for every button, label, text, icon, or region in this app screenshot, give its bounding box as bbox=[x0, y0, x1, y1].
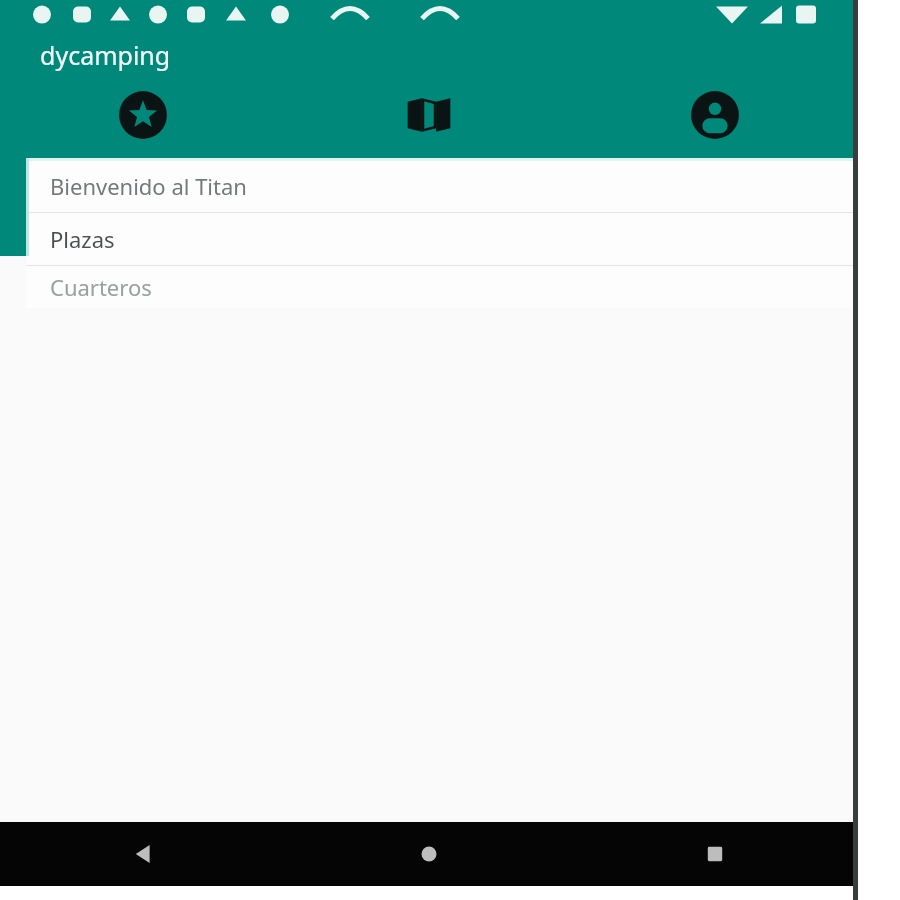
button[interactable]: Recents bbox=[572, 822, 858, 886]
button[interactable]: Bienvenido al Titan bbox=[26, 160, 858, 212]
button[interactable]: Home bbox=[286, 822, 572, 886]
button[interactable]: Back bbox=[0, 822, 286, 886]
button[interactable]: Plazas bbox=[26, 213, 858, 265]
staticText: Bienvenido al Titan bbox=[50, 171, 247, 201]
staticText: Plazas bbox=[50, 224, 115, 254]
staticText: dycamping bbox=[40, 38, 171, 72]
staticText: Cuarteros bbox=[50, 272, 152, 302]
button[interactable]: Favourites bbox=[0, 84, 286, 146]
button[interactable]: Cuarteros bbox=[26, 266, 858, 308]
button[interactable]: Map bbox=[286, 84, 572, 146]
button[interactable]: Profile bbox=[572, 84, 858, 146]
